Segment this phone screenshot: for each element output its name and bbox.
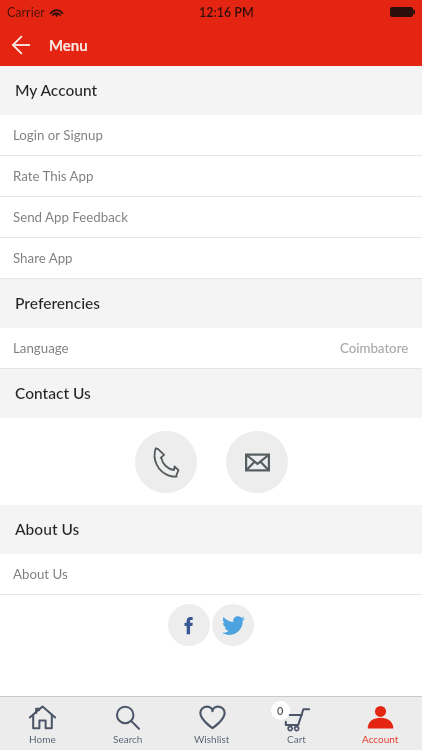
button[interactable]: Login or Signup xyxy=(0,115,422,156)
staticText: Login or Signup xyxy=(13,127,103,143)
staticText: About Us xyxy=(15,520,80,539)
staticText: My Account xyxy=(15,81,98,100)
button[interactable]: Search xyxy=(85,697,170,750)
button[interactable]: Send App Feedback xyxy=(0,197,422,238)
button[interactable]: Email us xyxy=(226,431,288,493)
staticText: 0 xyxy=(277,704,284,717)
button[interactable]: Share App xyxy=(0,238,422,279)
staticText: Coimbatore xyxy=(340,340,409,356)
button[interactable]: Back xyxy=(0,24,42,66)
staticText: About Us xyxy=(13,566,68,582)
button[interactable]: Home xyxy=(0,697,85,750)
staticText: Send App Feedback xyxy=(13,209,128,225)
button[interactable]: About Us xyxy=(0,554,422,595)
staticText: Preferencies xyxy=(15,294,101,313)
staticText: Account xyxy=(362,733,399,745)
button[interactable]: 0 xyxy=(254,697,338,750)
button[interactable]: Twitter xyxy=(212,604,254,646)
staticText: Rate This App xyxy=(13,168,94,184)
button[interactable]: Rate This App xyxy=(0,156,422,197)
staticText: 12:16 PM xyxy=(199,5,254,20)
staticText: Cart xyxy=(287,733,306,745)
staticText: Home xyxy=(29,733,56,745)
staticText: Wishlist xyxy=(194,733,230,745)
staticText: Menu xyxy=(49,36,88,54)
button[interactable]: Wishlist xyxy=(170,697,254,750)
staticText: Search xyxy=(113,733,143,745)
staticText: Language xyxy=(13,340,69,356)
button[interactable]: Call us xyxy=(135,431,197,493)
staticText: Contact Us xyxy=(15,384,91,403)
staticText: Share App xyxy=(13,250,73,266)
staticText: Carrier xyxy=(7,5,45,20)
button[interactable]: Facebook xyxy=(168,604,210,646)
button[interactable]: Language xyxy=(0,328,422,369)
button[interactable]: Account xyxy=(338,697,422,750)
